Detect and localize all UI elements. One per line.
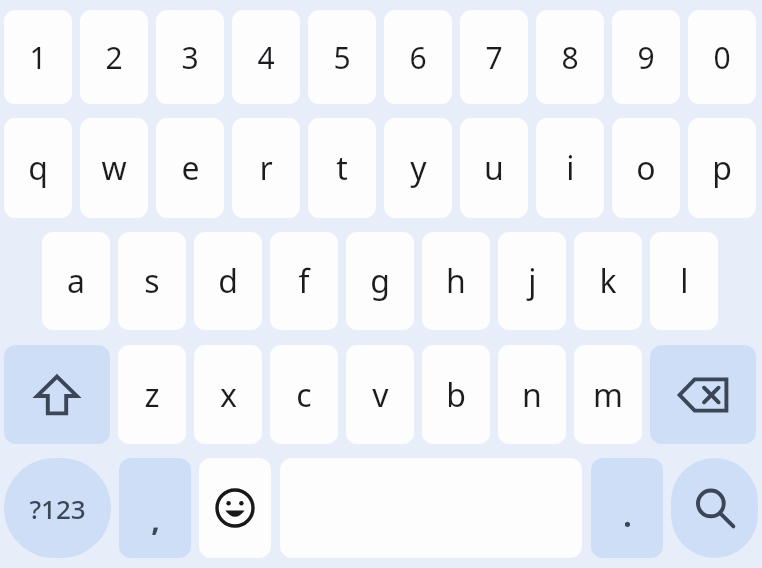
button[interactable]: f	[270, 232, 338, 330]
button[interactable]: Shift	[4, 345, 110, 444]
staticText: x	[220, 373, 237, 417]
staticText: d	[218, 259, 238, 303]
staticText: j	[528, 259, 537, 303]
button[interactable]: t	[308, 118, 376, 218]
button[interactable]: o	[612, 118, 680, 218]
button[interactable]: s	[118, 232, 186, 330]
button[interactable]: u	[460, 118, 528, 218]
staticText: z	[144, 373, 160, 417]
staticText: ,	[151, 499, 160, 540]
staticText: .	[623, 495, 632, 536]
staticText: 6	[409, 37, 427, 78]
staticText: c	[296, 373, 312, 417]
staticText: f	[298, 259, 310, 303]
staticText: 9	[637, 37, 655, 78]
button[interactable]: .	[591, 458, 663, 558]
staticText: q	[28, 146, 48, 190]
button[interactable]: k	[574, 232, 642, 330]
staticText: 2	[105, 37, 123, 78]
button[interactable]: g	[346, 232, 414, 330]
button[interactable]: q	[4, 118, 72, 218]
staticText: 1	[29, 37, 47, 78]
button[interactable]: p	[688, 118, 756, 218]
staticText: w	[101, 146, 127, 190]
staticText: k	[599, 259, 617, 303]
staticText: y	[410, 146, 427, 190]
staticText: l	[680, 259, 689, 303]
button[interactable]: 8	[536, 10, 604, 104]
staticText: s	[144, 259, 160, 303]
button[interactable]: Backspace	[650, 345, 756, 444]
staticText: n	[522, 373, 542, 417]
staticText: o	[636, 146, 656, 190]
button[interactable]: z	[118, 345, 186, 444]
button[interactable]: ,	[119, 458, 191, 558]
button[interactable]: 0	[688, 10, 756, 104]
button[interactable]: 3	[156, 10, 224, 104]
button[interactable]: h	[422, 232, 490, 330]
button[interactable]: 2	[80, 10, 148, 104]
staticText: a	[67, 259, 85, 303]
staticText: r	[259, 146, 273, 190]
staticText: ?123	[29, 491, 86, 526]
staticText: v	[372, 373, 389, 417]
button[interactable]: j	[498, 232, 566, 330]
button[interactable]: l	[650, 232, 718, 330]
staticText: 7	[485, 37, 503, 78]
button[interactable]: i	[536, 118, 604, 218]
staticText: 5	[333, 37, 351, 78]
staticText: g	[370, 259, 390, 303]
staticText: 3	[181, 37, 199, 78]
button[interactable]: 5	[308, 10, 376, 104]
button[interactable]: c	[270, 345, 338, 444]
button[interactable]: Emoji	[199, 458, 271, 558]
button[interactable]: y	[384, 118, 452, 218]
button[interactable]: 6	[384, 10, 452, 104]
button[interactable]: r	[232, 118, 300, 218]
button[interactable]: a	[42, 232, 110, 330]
button[interactable]: 4	[232, 10, 300, 104]
staticText: t	[336, 146, 348, 190]
button[interactable]: 1	[4, 10, 72, 104]
button[interactable]: x	[194, 345, 262, 444]
staticText: 4	[257, 37, 275, 78]
button[interactable]: v	[346, 345, 414, 444]
button[interactable]: Search	[671, 458, 758, 558]
staticText: m	[593, 373, 623, 417]
staticText: i	[566, 146, 575, 190]
button[interactable]: d	[194, 232, 262, 330]
staticText: u	[484, 146, 504, 190]
staticText: p	[712, 146, 732, 190]
button[interactable]: ?123	[4, 458, 111, 558]
staticText: 8	[561, 37, 579, 78]
button[interactable]: m	[574, 345, 642, 444]
button[interactable]: 9	[612, 10, 680, 104]
staticText: 0	[713, 37, 731, 78]
button[interactable]: b	[422, 345, 490, 444]
button[interactable]: e	[156, 118, 224, 218]
staticText: h	[446, 259, 466, 303]
staticText: b	[446, 373, 466, 417]
staticText: e	[181, 146, 200, 190]
button[interactable]: w	[80, 118, 148, 218]
button[interactable]: n	[498, 345, 566, 444]
button[interactable]: 7	[460, 10, 528, 104]
